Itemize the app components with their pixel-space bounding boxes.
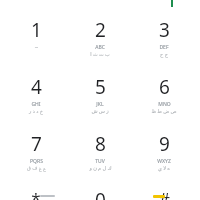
- staticText: ص ض ط ظ: [151, 108, 177, 115]
- staticText: ه لا ي: [158, 165, 170, 172]
- staticText: ABC: [95, 44, 105, 51]
- staticText: 0: [95, 187, 106, 200]
- staticText: 8: [95, 131, 106, 157]
- staticText: #: [159, 187, 170, 200]
- button[interactable]: *: [8, 186, 64, 200]
- staticText: 6: [159, 74, 170, 100]
- staticText: خ د ذ ر: [29, 108, 43, 115]
- button[interactable]: Backspace: [40, 195, 55, 197]
- button[interactable]: 1: [8, 16, 64, 49]
- button[interactable]: 9: [136, 130, 192, 172]
- button[interactable]: 7: [8, 130, 64, 172]
- button[interactable]: 5: [72, 73, 128, 115]
- staticText: ــ: [35, 43, 38, 49]
- staticText: 2: [95, 17, 106, 43]
- button[interactable]: 0: [72, 186, 128, 200]
- staticText: 4: [31, 74, 42, 100]
- staticText: JKL: [96, 101, 104, 108]
- staticText: GHI: [31, 101, 41, 108]
- staticText: MNO: [158, 101, 171, 108]
- button[interactable]: 3: [136, 16, 192, 58]
- button[interactable]: 4: [8, 73, 64, 115]
- button[interactable]: #: [136, 186, 192, 200]
- staticText: ك ل م ن و: [89, 165, 112, 172]
- button[interactable]: 8: [72, 130, 128, 172]
- staticText: TUV: [95, 158, 105, 165]
- staticText: ب ت ث ا: [90, 51, 110, 58]
- button[interactable]: 6: [136, 73, 192, 115]
- staticText: ع غ ف ق: [27, 165, 46, 172]
- staticText: ز س ش: [91, 108, 109, 115]
- staticText: 7: [31, 131, 42, 157]
- staticText: WXYZ: [157, 158, 171, 165]
- staticText: 9: [159, 131, 170, 157]
- staticText: *: [31, 187, 41, 200]
- staticText: PQRS: [30, 158, 43, 165]
- staticText: DEF: [159, 44, 169, 51]
- button[interactable]: Contacts: [153, 195, 165, 198]
- staticText: ج ح: [160, 51, 168, 58]
- staticText: 5: [95, 74, 106, 100]
- button[interactable]: 2: [72, 16, 128, 58]
- staticText: 1: [31, 17, 42, 43]
- staticText: 3: [159, 17, 170, 43]
